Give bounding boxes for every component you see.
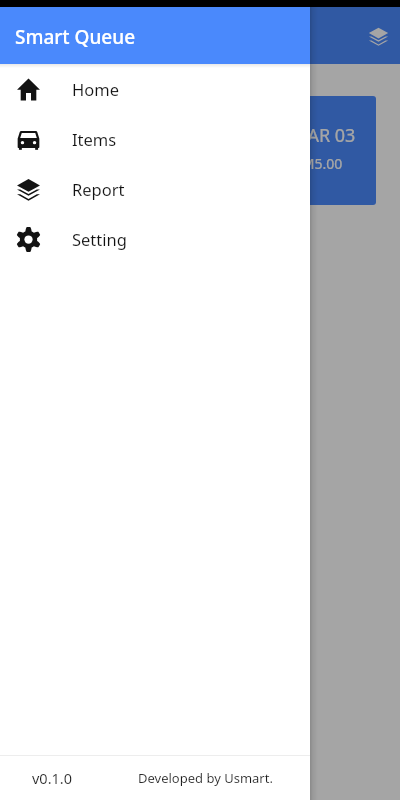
- staticText: Smart Queue: [15, 24, 136, 50]
- staticText: v0.1.0: [32, 768, 73, 788]
- button[interactable]: Report: [0, 164, 310, 214]
- staticText: Setting: [72, 228, 127, 250]
- staticText: Developed by Usmart.: [138, 769, 273, 787]
- staticText: Report: [72, 178, 125, 200]
- button[interactable]: Close navigation drawer: [0, 0, 400, 800]
- button[interactable]: Open navigation drawer: [6, 12, 54, 60]
- staticText: CAR 03: [296, 123, 356, 148]
- button[interactable]: Setting: [0, 214, 310, 264]
- staticText: Items: [72, 128, 117, 150]
- button[interactable]: Layers: [356, 14, 400, 58]
- staticText: RM5.00: [293, 154, 343, 173]
- staticText: Home: [72, 78, 119, 100]
- button[interactable]: Items: [0, 114, 310, 164]
- staticText: Smart Queue: [64, 23, 185, 49]
- button[interactable]: CAR 03: [267, 96, 376, 205]
- button[interactable]: Home: [0, 64, 310, 114]
- button[interactable]: CAR 01: [24, 96, 134, 205]
- staticText: CAR 01: [53, 123, 113, 148]
